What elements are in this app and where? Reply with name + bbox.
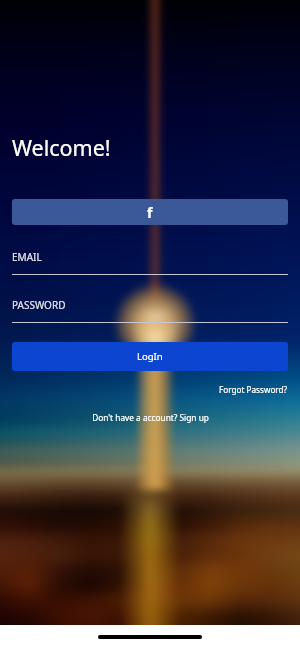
staticText: f: [147, 203, 153, 222]
staticText: LogIn: [137, 350, 163, 363]
button[interactable]: Forgot Password?: [208, 382, 288, 396]
staticText: Welcome!: [12, 133, 111, 162]
button[interactable]: LogIn: [12, 342, 288, 371]
button[interactable]: PASSWORD: [12, 298, 288, 326]
button[interactable]: Don't have a account? Sign up: [80, 411, 220, 424]
staticText: PASSWORD: [12, 298, 66, 312]
staticText: EMAIL: [12, 250, 42, 264]
button[interactable]: EMAIL: [12, 250, 288, 278]
staticText: Don't have a account? Sign up: [92, 412, 209, 423]
button[interactable]: Continue with Facebook: [12, 199, 288, 225]
staticText: Forgot Password?: [219, 384, 288, 395]
